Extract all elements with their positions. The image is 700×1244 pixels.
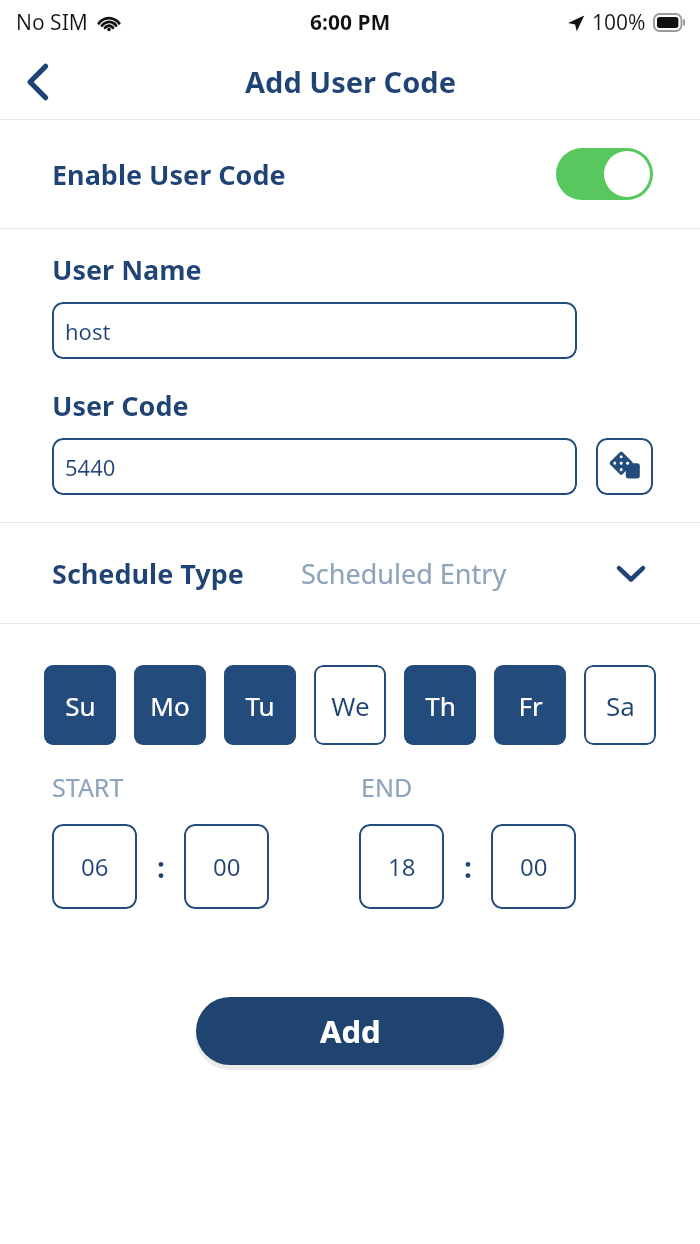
button[interactable]: Generate random code — [596, 438, 653, 495]
staticText: START — [52, 770, 124, 804]
button[interactable]: 06 — [52, 824, 137, 909]
button[interactable]: 00 — [491, 824, 576, 909]
staticText: 5440 — [65, 452, 116, 482]
button[interactable]: Enable User Code — [0, 120, 700, 228]
staticText: Su — [65, 688, 96, 723]
button[interactable]: 5440 — [52, 438, 577, 495]
staticText: Scheduled Entry — [301, 555, 507, 592]
button[interactable]: Th — [404, 665, 476, 745]
staticText: END — [361, 770, 413, 804]
staticText: Th — [425, 688, 456, 723]
staticText: User Code — [52, 387, 189, 424]
staticText: 18 — [388, 850, 416, 883]
button[interactable]: 18 — [359, 824, 444, 909]
button[interactable]: 00 — [184, 824, 269, 909]
button[interactable]: Tu — [224, 665, 296, 745]
staticText: Enable User Code — [52, 156, 286, 193]
staticText: 00 — [213, 850, 241, 883]
staticText: No SIM — [16, 8, 88, 37]
staticText: : — [157, 848, 165, 886]
staticText: Tu — [245, 688, 275, 723]
staticText: Sa — [606, 688, 635, 723]
button[interactable]: Sa — [584, 665, 656, 745]
button[interactable]: Back — [10, 54, 66, 110]
staticText: host — [65, 316, 111, 346]
button[interactable]: Su — [44, 665, 116, 745]
staticText: 00 — [520, 850, 548, 883]
button[interactable]: Schedule Type — [0, 523, 700, 623]
staticText: Fr — [518, 688, 543, 723]
staticText: User Name — [52, 251, 202, 288]
button[interactable]: Mo — [134, 665, 206, 745]
button[interactable]: host — [52, 302, 577, 359]
staticText: Schedule Type — [52, 555, 244, 592]
staticText: We — [331, 688, 370, 723]
button[interactable]: Enable User Code toggle — [556, 148, 653, 200]
staticText: 06 — [81, 850, 109, 883]
button[interactable]: Fr — [494, 665, 566, 745]
button[interactable]: Add — [196, 997, 504, 1065]
staticText: Add User Code — [245, 62, 456, 101]
button[interactable]: Change schedule type — [609, 551, 653, 595]
button[interactable]: We — [314, 665, 386, 745]
staticText: : — [464, 848, 472, 886]
staticText: 6:00 PM — [310, 8, 391, 37]
staticText: 100% — [592, 8, 646, 37]
staticText: Mo — [150, 688, 190, 723]
staticText: Add — [320, 1010, 381, 1052]
